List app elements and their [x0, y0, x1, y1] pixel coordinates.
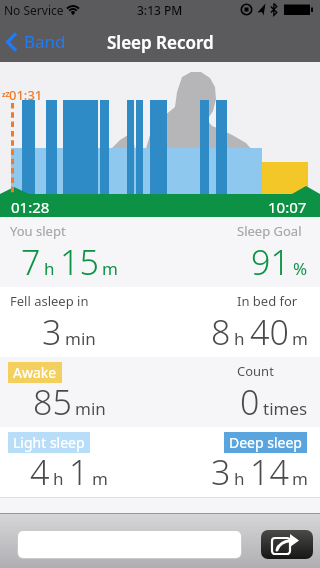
staticText: Sleep Goal: [237, 222, 302, 240]
staticText: 14: [250, 449, 289, 495]
staticText: Count: [237, 362, 274, 380]
staticText: 01:28: [11, 197, 50, 217]
staticText: 0: [240, 379, 260, 425]
staticText: 10:07: [268, 197, 307, 217]
staticText: h: [53, 467, 64, 490]
staticText: min: [65, 327, 96, 350]
button[interactable]: Band: [0, 30, 66, 53]
button[interactable]: Awake: [8, 362, 62, 383]
staticText: min: [75, 397, 106, 420]
staticText: h: [234, 467, 245, 490]
staticText: In bed for: [237, 292, 298, 310]
button[interactable]: Deep sleep: [224, 432, 307, 453]
staticText: Fell asleep in: [10, 292, 89, 310]
button[interactable]: [18, 531, 241, 558]
staticText: h: [44, 257, 55, 280]
staticText: %: [293, 257, 308, 280]
staticText: 15: [60, 239, 99, 285]
staticText: 8: [211, 309, 231, 355]
button[interactable]: Light sleep: [8, 432, 90, 453]
staticText: No Service: [4, 2, 64, 18]
staticText: h: [234, 327, 245, 350]
staticText: m: [292, 467, 308, 490]
staticText: times: [263, 397, 308, 420]
button[interactable]: [261, 530, 313, 559]
staticText: Awake: [13, 363, 57, 382]
staticText: Light sleep: [13, 433, 85, 452]
staticText: m: [292, 327, 308, 350]
staticText: You slept: [10, 222, 66, 240]
staticText: m: [92, 467, 108, 490]
staticText: 1: [69, 449, 89, 495]
staticText: zZ: [2, 90, 10, 100]
staticText: 85: [33, 379, 72, 425]
staticText: Band: [24, 30, 66, 53]
staticText: Deep sleep: [229, 433, 302, 452]
staticText: Sleep Record: [107, 31, 214, 54]
staticText: 01:31: [9, 86, 43, 104]
staticText: m: [102, 257, 118, 280]
staticText: 3: [42, 309, 62, 355]
staticText: 91: [251, 239, 290, 285]
staticText: 40: [250, 309, 289, 355]
staticText: 7: [21, 239, 41, 285]
staticText: 3: [211, 449, 231, 495]
staticText: 4: [30, 449, 50, 495]
staticText: 3:13 PM: [137, 2, 183, 18]
